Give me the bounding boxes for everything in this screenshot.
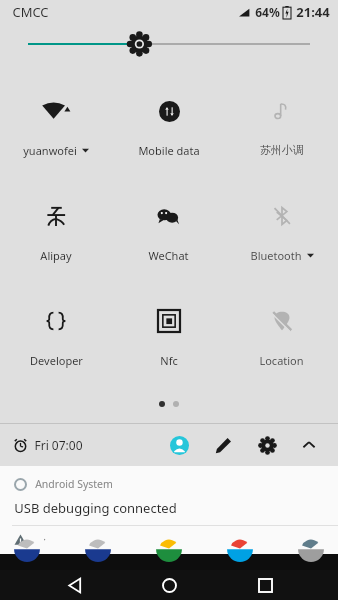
other: NFC [154, 306, 184, 336]
staticText: USB debugging connected [14, 499, 177, 517]
button[interactable] [28, 32, 310, 56]
button[interactable]: Back [52, 570, 96, 600]
staticText: Developer [30, 353, 83, 368]
staticText: CMCC [12, 3, 49, 21]
staticText: 21:44 [296, 3, 330, 21]
button[interactable]: Recents [243, 570, 287, 600]
staticText: · [43, 532, 46, 546]
other: Alipay [41, 201, 71, 231]
other: Wi-Fi [41, 96, 71, 126]
button[interactable]: Alipay [0, 183, 112, 288]
button[interactable]: User [162, 428, 196, 462]
other: Mobile data [154, 96, 184, 126]
other: WeChat [154, 201, 184, 231]
button[interactable]: WeChat [112, 183, 225, 288]
button[interactable]: NFC [112, 288, 225, 393]
button[interactable]: · [14, 526, 338, 552]
button[interactable]: Edit [206, 428, 240, 462]
other: Bluetooth [267, 201, 297, 231]
staticText: Fri 07:00 [34, 437, 83, 453]
other: Location [267, 306, 297, 336]
button[interactable]: Developer options [0, 288, 112, 393]
staticText: Android System [35, 477, 113, 491]
other: Music [267, 96, 297, 126]
button[interactable]: Home [147, 570, 191, 600]
staticText: Bluetooth [250, 248, 302, 263]
staticText: Alipay [40, 248, 72, 263]
button[interactable]: Mobile data [112, 78, 225, 183]
button[interactable]: Fri 07:00 [14, 437, 83, 453]
staticText: yuanwofei [23, 143, 77, 158]
staticText: WeChat [148, 248, 189, 263]
button[interactable]: USB debugging connected [14, 497, 338, 519]
button[interactable]: Android System [14, 474, 338, 494]
other: Developer options [41, 306, 71, 336]
button[interactable]: Settings [250, 428, 284, 462]
staticText: 苏州小调 [260, 143, 304, 157]
staticText: 64% [255, 4, 280, 20]
button[interactable]: Bluetooth [225, 183, 338, 288]
button[interactable]: Music [225, 78, 338, 183]
staticText: Nfc [160, 353, 178, 368]
button[interactable]: Collapse [294, 430, 324, 460]
button[interactable]: Wi-Fi [0, 78, 112, 183]
staticText: Mobile data [138, 143, 200, 158]
button[interactable]: Location [225, 288, 338, 393]
staticText: Location [259, 353, 304, 368]
